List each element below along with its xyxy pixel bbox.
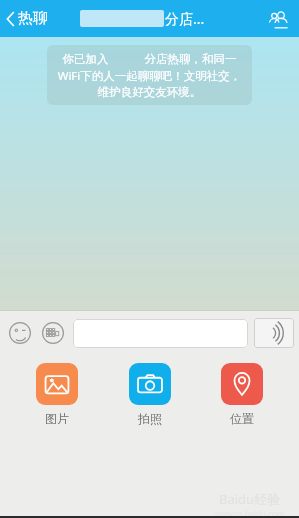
staticText: Baidu经验 (219, 490, 281, 508)
button[interactable]: 位置 (207, 363, 277, 426)
button[interactable]: Emoji (5, 318, 35, 348)
button[interactable]: Members (259, 0, 299, 37)
staticText: jingyan.baidu.com (215, 508, 285, 518)
button[interactable]: 图片 (22, 363, 92, 426)
staticText: 你已加入 分店热聊，和同一WiFi下的人一起聊聊吧！文明社交，维护良好交友环境。 (55, 51, 244, 99)
button[interactable]: Keyboard (38, 318, 68, 348)
staticText: 拍照 (138, 411, 162, 426)
staticText: 热聊 (18, 9, 48, 28)
button[interactable]: 热聊 (0, 0, 54, 37)
staticText: 分店... (165, 9, 205, 28)
button[interactable] (73, 319, 248, 348)
staticText: 位置 (230, 411, 254, 426)
button[interactable]: 拍照 (115, 363, 185, 426)
staticText: 图片 (45, 411, 69, 426)
button[interactable]: Voice message (254, 318, 294, 348)
